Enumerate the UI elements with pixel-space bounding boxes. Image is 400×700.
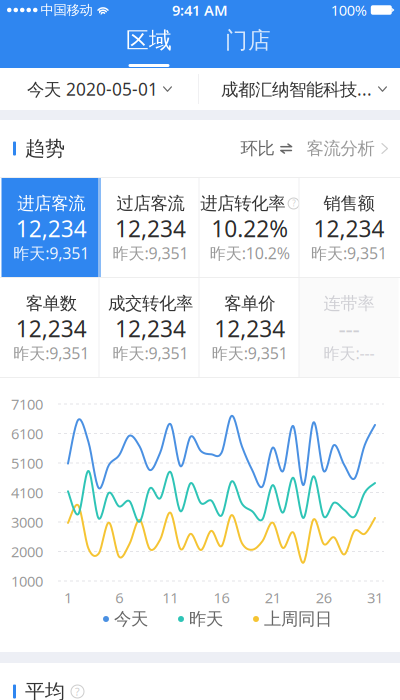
staticText: 昨天:9,351: [212, 342, 288, 364]
staticText: 昨天:9,351: [13, 342, 89, 364]
button[interactable]: 客单数: [1, 278, 101, 377]
staticText: 成都汇纳智能科技...: [221, 77, 372, 100]
staticText: 16: [213, 588, 229, 607]
staticText: 5100: [11, 453, 43, 473]
staticText: 6100: [11, 424, 43, 443]
staticText: 门店: [225, 27, 271, 54]
button[interactable]: 客单价: [200, 278, 299, 377]
staticText: 进店转化率: [200, 193, 285, 214]
staticText: 9:41 AM: [172, 0, 228, 20]
button[interactable]: 客流分析: [306, 131, 400, 165]
staticText: 区域: [126, 27, 172, 54]
staticText: 12,234: [16, 313, 87, 343]
staticText: 7100: [11, 394, 43, 414]
staticText: 12,234: [214, 313, 285, 343]
staticText: 平均: [25, 679, 65, 700]
staticText: 今天: [114, 608, 148, 630]
staticText: 销售额: [323, 193, 374, 214]
button[interactable]: 销售额: [299, 178, 398, 277]
staticText: ?: [292, 198, 295, 209]
staticText: ?: [75, 684, 80, 699]
staticText: 3000: [11, 512, 43, 532]
staticText: 100%: [331, 0, 367, 20]
staticText: 中国移动: [40, 2, 92, 18]
staticText: 10.22%: [211, 213, 288, 243]
button[interactable]: 成都汇纳智能科技...: [199, 68, 400, 110]
staticText: 12,234: [313, 213, 384, 243]
staticText: 客单数: [26, 293, 77, 314]
button[interactable]: 成交转化率: [101, 278, 200, 377]
staticText: 昨天:9,351: [13, 242, 89, 264]
button[interactable]: 过店客流: [101, 178, 200, 277]
staticText: ---: [338, 313, 359, 343]
staticText: 12,234: [16, 213, 87, 243]
staticText: 昨天:9,351: [112, 242, 188, 264]
staticText: 客单价: [224, 293, 275, 314]
staticText: 26: [316, 588, 332, 607]
staticText: 上周同日: [264, 608, 332, 630]
staticText: 过店客流: [116, 193, 184, 214]
staticText: 21: [265, 588, 281, 607]
button[interactable]: 门店: [206, 20, 290, 68]
staticText: 2000: [11, 542, 43, 561]
button[interactable]: 区域: [107, 20, 191, 68]
staticText: 4100: [11, 483, 43, 502]
staticText: 趋势: [25, 136, 65, 161]
staticText: 客流分析: [306, 138, 374, 159]
staticText: 今天 2020-05-01: [27, 77, 158, 100]
button[interactable]: 进店客流: [1, 178, 101, 277]
staticText: 6: [115, 588, 123, 607]
staticText: 连带率: [323, 293, 374, 314]
staticText: 进店客流: [17, 193, 85, 214]
staticText: 12,234: [115, 213, 186, 243]
staticText: 昨天: [189, 608, 223, 630]
staticText: 31: [367, 588, 383, 607]
staticText: 昨天:9,351: [311, 242, 387, 264]
button[interactable]: 今天 2020-05-01: [0, 68, 198, 110]
staticText: 1: [64, 588, 72, 607]
staticText: 1000: [11, 571, 43, 591]
staticText: 环比: [240, 138, 274, 159]
button[interactable]: 环比: [240, 131, 306, 165]
button[interactable]: 连带率: [299, 278, 398, 377]
staticText: 昨天:---: [323, 342, 374, 364]
staticText: 成交转化率: [108, 293, 193, 314]
staticText: 昨天:9,351: [112, 342, 188, 364]
staticText: 昨天:10.2%: [210, 242, 290, 264]
staticText: 12,234: [115, 313, 186, 343]
staticText: 11: [162, 588, 178, 607]
button[interactable]: 进店转化率: [200, 178, 299, 277]
